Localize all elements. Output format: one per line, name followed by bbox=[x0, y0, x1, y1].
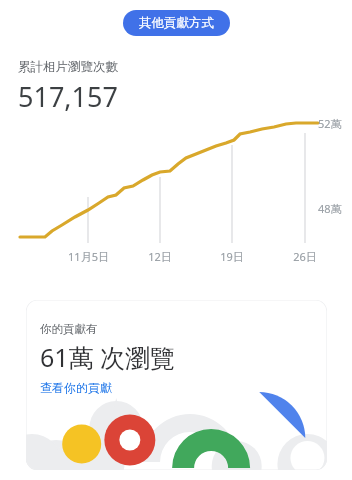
staticText: 19日 bbox=[220, 249, 244, 264]
staticText: 52萬 bbox=[318, 116, 342, 131]
staticText: 48萬 bbox=[318, 201, 342, 216]
staticText: 61萬 次瀏覽 bbox=[40, 340, 176, 374]
staticText: 查看你的貢獻 bbox=[40, 380, 112, 395]
staticText: 11月5日 bbox=[68, 249, 109, 264]
button[interactable]: 查看你的貢獻 bbox=[40, 380, 112, 395]
staticText: 26日 bbox=[293, 249, 317, 264]
staticText: 517,157 bbox=[18, 78, 118, 115]
button[interactable]: 其他貢獻方式 bbox=[123, 10, 230, 36]
staticText: 其他貢獻方式 bbox=[139, 15, 214, 31]
staticText: 累計相片瀏覽次數 bbox=[18, 59, 118, 75]
staticText: 你的貢獻有 bbox=[40, 322, 98, 336]
button[interactable]: 你的貢獻有 bbox=[26, 300, 327, 470]
staticText: 12日 bbox=[148, 249, 172, 264]
